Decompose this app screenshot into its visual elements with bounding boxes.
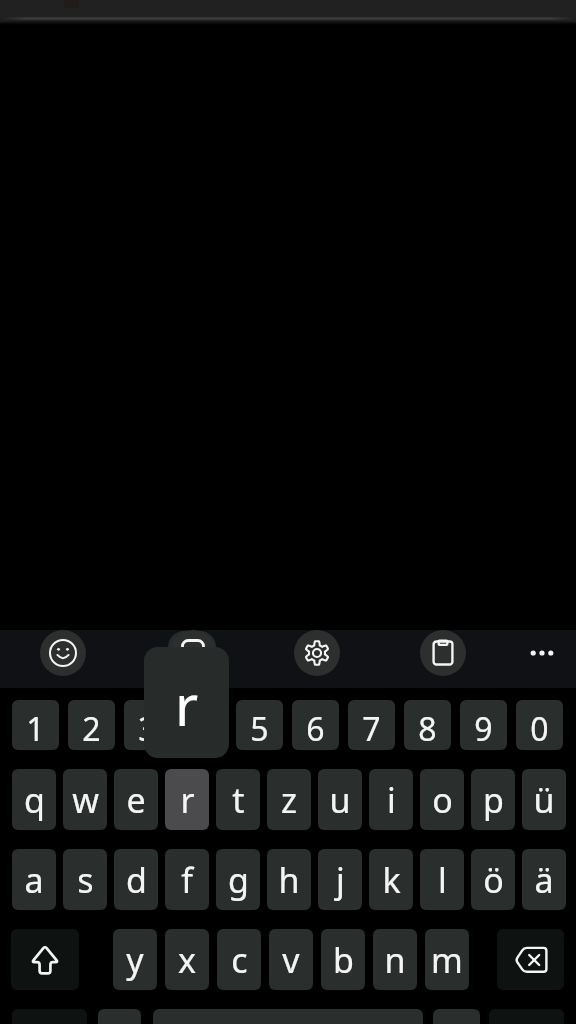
staticText: 9 [474, 707, 493, 750]
staticText: i [387, 777, 396, 823]
staticText: x [178, 937, 196, 983]
staticText: g [228, 857, 249, 903]
button[interactable]: Settings [294, 630, 340, 676]
staticText: e [126, 777, 146, 823]
staticText: 1 [26, 707, 45, 750]
button[interactable]: d [114, 849, 158, 910]
button[interactable]: . [433, 1009, 480, 1024]
staticText: s [77, 857, 94, 903]
button[interactable]: Shift [11, 929, 79, 990]
staticText: 3 [138, 707, 157, 750]
button[interactable]: i [369, 769, 413, 830]
staticText: h [278, 857, 300, 903]
staticText: t [232, 777, 245, 823]
staticText: v [282, 937, 300, 983]
staticText: b [333, 937, 354, 983]
staticText: o [432, 777, 453, 823]
button[interactable]: ü [522, 769, 566, 830]
button[interactable]: q [12, 769, 56, 830]
button[interactable]: z [267, 769, 311, 830]
button[interactable]: u [318, 769, 362, 830]
staticText: 6 [306, 707, 325, 750]
button[interactable]: , [98, 1009, 141, 1024]
button[interactable]: r [165, 769, 209, 830]
staticText: y [126, 937, 144, 983]
staticText: r [175, 666, 199, 742]
button[interactable]: 8 [404, 700, 451, 750]
staticText: m [431, 937, 463, 983]
button[interactable]: Hide keyboard [170, 630, 216, 676]
staticText: n [384, 937, 406, 983]
staticText: 7 [362, 707, 381, 750]
button[interactable]: g [216, 849, 260, 910]
button[interactable]: 3 [124, 700, 171, 750]
button[interactable]: b [321, 929, 365, 990]
staticText: ü [533, 777, 555, 823]
button[interactable]: ä [522, 849, 566, 910]
button[interactable]: j [318, 849, 362, 910]
button[interactable]: Backspace [497, 929, 564, 990]
button[interactable]: t [216, 769, 260, 830]
button[interactable]: k [369, 849, 413, 910]
staticText: f [181, 857, 193, 903]
staticText: k [382, 857, 401, 903]
staticText: 2 [82, 707, 101, 750]
button[interactable]: p [471, 769, 515, 830]
button[interactable]: More options [518, 629, 566, 677]
button[interactable]: ö [471, 849, 515, 910]
button[interactable]: n [373, 929, 417, 990]
button[interactable]: w [63, 769, 107, 830]
button[interactable]: 7 [348, 700, 395, 750]
button[interactable]: h [267, 849, 311, 910]
staticText: ä [534, 857, 554, 903]
staticText: z [281, 777, 297, 823]
button[interactable]: v [269, 929, 313, 990]
button[interactable]: 5 [236, 700, 283, 750]
staticText: u [329, 777, 351, 823]
button[interactable]: 1 [12, 700, 59, 750]
button[interactable]: Emoji [40, 630, 86, 676]
staticText: r [180, 777, 195, 823]
staticText: 5 [250, 707, 269, 750]
staticText: p [483, 777, 504, 823]
button[interactable]: e [114, 769, 158, 830]
button[interactable]: f [165, 849, 209, 910]
staticText: 0 [530, 707, 549, 750]
button[interactable]: 6 [292, 700, 339, 750]
staticText: w [72, 777, 99, 823]
button[interactable]: o [420, 769, 464, 830]
staticText: l [438, 857, 447, 903]
button[interactable]: l [420, 849, 464, 910]
staticText: q [24, 777, 45, 823]
button[interactable]: s [63, 849, 107, 910]
button[interactable]: 9 [460, 700, 507, 750]
button[interactable]: y [113, 929, 157, 990]
staticText: 8 [418, 707, 437, 750]
staticText: ö [483, 857, 504, 903]
button[interactable]: 2 [68, 700, 115, 750]
button[interactable]: 4 [180, 700, 227, 750]
button[interactable]: x [165, 929, 209, 990]
button[interactable]: Clipboard [420, 630, 466, 676]
staticText: a [24, 857, 44, 903]
button[interactable]: c [217, 929, 261, 990]
button[interactable]: a [12, 849, 56, 910]
staticText: j [336, 857, 345, 903]
button[interactable]: m [425, 929, 469, 990]
staticText: d [126, 857, 147, 903]
button[interactable]: 0 [516, 700, 563, 750]
staticText: c [231, 937, 248, 983]
